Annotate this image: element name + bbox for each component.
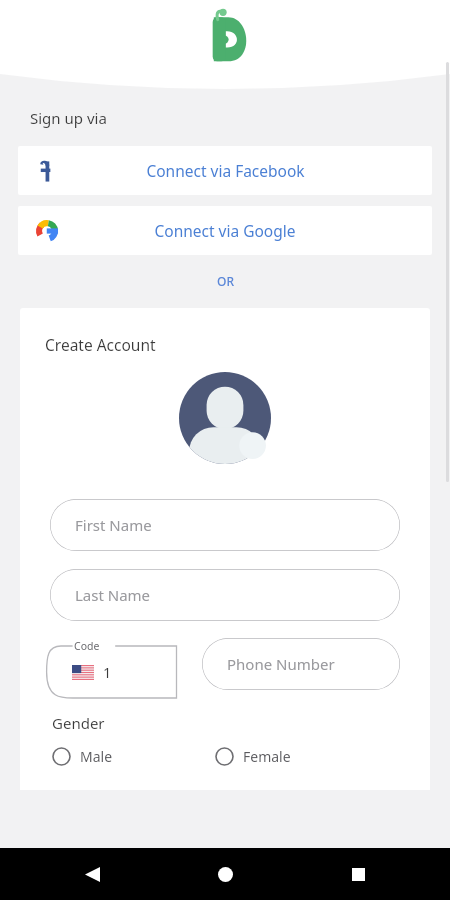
staticText: Male <box>80 747 113 766</box>
staticText: Connect via Google <box>154 220 296 241</box>
staticText: Sign up via <box>30 108 107 128</box>
button[interactable]: Connect via Facebook <box>18 146 432 195</box>
button[interactable]: Connect via Google <box>18 206 432 255</box>
staticText: 1 <box>103 662 112 682</box>
button[interactable]: Male <box>52 747 113 766</box>
staticText: Last Name <box>75 585 151 605</box>
button[interactable]: Back <box>72 854 112 894</box>
button[interactable]: Change profile photo <box>179 372 271 464</box>
staticText: Phone Number <box>227 654 335 674</box>
button[interactable]: Phone Number <box>202 638 400 690</box>
staticText: Gender <box>52 713 105 733</box>
button[interactable]: Home <box>205 854 245 894</box>
button[interactable]: Last Name <box>50 569 400 621</box>
button[interactable]: Recent apps <box>338 854 378 894</box>
button[interactable]: Female <box>215 747 291 766</box>
button[interactable]: Country code <box>50 638 183 698</box>
button[interactable]: First Name <box>50 499 400 551</box>
staticText: Female <box>243 747 291 766</box>
staticText: Code <box>74 639 100 653</box>
staticText: OR <box>217 273 234 289</box>
staticText: Create Account <box>45 334 156 355</box>
staticText: Connect via Facebook <box>146 160 305 181</box>
staticText: First Name <box>75 515 152 535</box>
